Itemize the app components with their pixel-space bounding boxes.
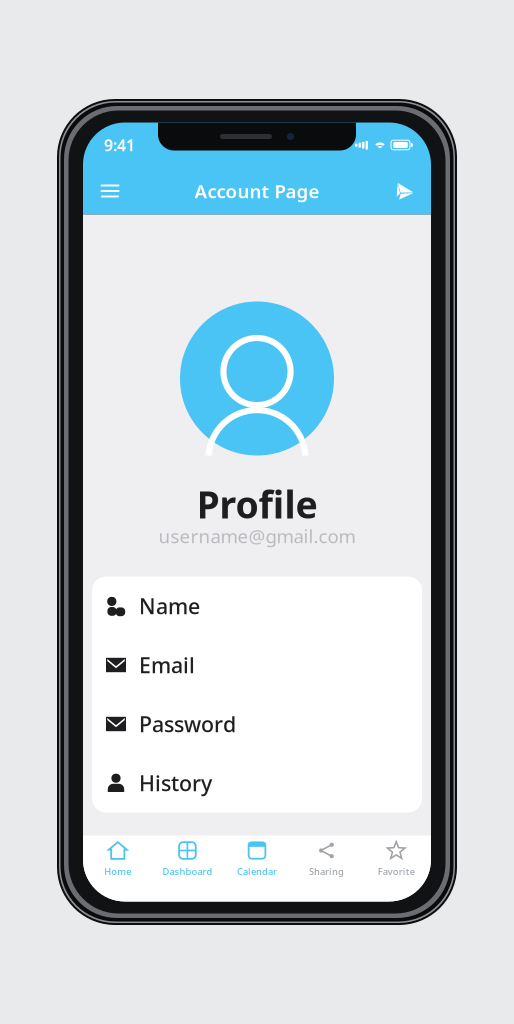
button[interactable]: Dashboard xyxy=(153,835,222,901)
button[interactable]: Favorite xyxy=(361,835,431,901)
staticText: Home xyxy=(104,865,131,878)
staticText: Profile xyxy=(196,479,317,529)
button[interactable]: Sharing xyxy=(292,835,361,901)
staticText: Account Page xyxy=(194,179,319,203)
staticText: Sharing xyxy=(309,865,344,878)
staticText: History xyxy=(139,769,212,797)
staticText: Email xyxy=(139,651,195,679)
button[interactable]: Home xyxy=(83,835,153,901)
staticText: Calendar xyxy=(237,865,277,878)
button[interactable]: Menu xyxy=(88,169,132,213)
staticText: Password xyxy=(139,710,236,738)
staticText: Dashboard xyxy=(162,865,212,878)
button[interactable]: Send xyxy=(382,169,426,213)
button[interactable]: Name xyxy=(92,576,422,635)
button[interactable]: Email xyxy=(92,635,422,694)
staticText: Name xyxy=(139,592,200,620)
staticText: username@gmail.com xyxy=(158,524,355,548)
button[interactable]: History xyxy=(92,753,422,812)
staticText: Favorite xyxy=(378,865,415,878)
staticText: 9:41 xyxy=(104,134,135,156)
button[interactable]: Calendar xyxy=(222,835,292,901)
button[interactable]: Password xyxy=(92,694,422,753)
